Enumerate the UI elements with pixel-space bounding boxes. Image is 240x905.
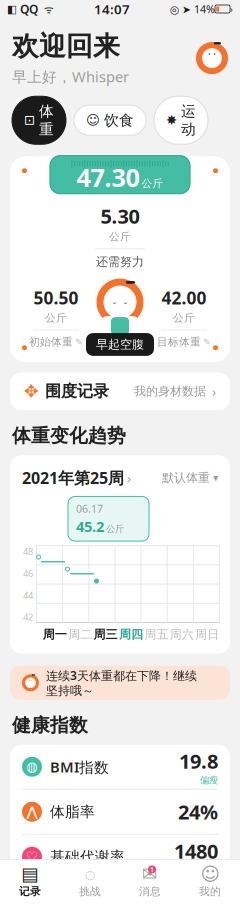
staticText: 06.17 [76, 501, 103, 516]
staticText: 50.50 [33, 286, 78, 309]
staticText: 早上好，Whisper [12, 67, 129, 86]
staticText: 周三 [94, 627, 118, 642]
staticText: 47.30 [76, 160, 139, 194]
staticText: 健康指数 [12, 714, 88, 737]
staticText: 围度记录 [45, 381, 109, 401]
staticText: 2021年第25周 [22, 467, 124, 488]
staticText: 1 [150, 865, 154, 874]
staticText: 还需努力 [96, 254, 144, 269]
staticText: 运动 [181, 102, 196, 138]
staticText: ᯤ [38, 2, 54, 16]
staticText: ☺ [200, 863, 219, 885]
staticText: 消息 [139, 885, 161, 898]
staticText: ⊡ [24, 113, 35, 128]
staticText: 44 [23, 589, 33, 601]
staticText: 14:07 [94, 0, 130, 18]
staticText: › [212, 382, 216, 400]
button[interactable]: 默认体重 [162, 470, 218, 485]
staticText: 周六 [170, 627, 194, 642]
staticText: 我的 [199, 885, 221, 898]
button[interactable]: ◌ [60, 859, 120, 905]
staticText: 目标体重 [157, 335, 201, 349]
button[interactable]: 50.50 [28, 286, 84, 349]
staticText: 45.2 [76, 517, 104, 536]
staticText: › [127, 469, 131, 487]
staticText: ✎ [203, 337, 211, 347]
staticText: 体脂率 [50, 803, 95, 821]
staticText: 公斤 [106, 523, 124, 535]
staticText: ◧ [7, 3, 17, 15]
staticText: 周一 [43, 627, 67, 642]
staticText: 46 [23, 567, 33, 579]
staticText: 19.8 [179, 748, 218, 774]
staticText: QQ [17, 1, 38, 17]
button[interactable]: ◍ [10, 745, 230, 789]
staticText: ✎ [75, 337, 83, 347]
staticText: 42.00 [161, 286, 206, 309]
staticText: 1480 [174, 838, 218, 864]
staticText: 48 [23, 545, 33, 557]
staticText: 公斤 [141, 177, 163, 190]
staticText: ˘ [112, 299, 116, 311]
staticText: 千卡 [200, 864, 218, 876]
button[interactable]: ⊡ [12, 96, 66, 144]
staticText: ◌ [84, 862, 95, 886]
staticText: ▤ [21, 863, 39, 885]
staticText: 5.30 [100, 203, 139, 229]
staticText: 42 [23, 611, 33, 623]
staticText: 周日 [195, 627, 219, 642]
button[interactable]: ☺ [180, 859, 240, 905]
staticText: 欢迎回来 [12, 30, 120, 63]
button[interactable]: ☺ [74, 105, 146, 135]
staticText: 周四 [119, 627, 143, 642]
button[interactable]: 早起空腹 [86, 333, 154, 356]
staticText: ◎ ➤ 14% [170, 2, 215, 16]
button[interactable]: 42.00 [156, 286, 212, 349]
button[interactable]: ✥ [10, 372, 230, 410]
staticText: 周二 [68, 627, 92, 642]
staticText: 连续3天体重都在下降！继续坚持哦～ [46, 667, 197, 698]
staticText: BMI指数 [50, 757, 109, 777]
button[interactable]: ▤ [0, 859, 60, 905]
staticText: 周五 [144, 627, 168, 642]
button[interactable]: ♡ [10, 835, 230, 879]
staticText: 体重变化趋势 [12, 424, 126, 447]
button[interactable]: 2021年第25周 [22, 467, 131, 488]
staticText: 挑战 [79, 885, 101, 898]
staticText: 初始体重 [29, 335, 73, 349]
staticText: ✉ [142, 863, 158, 885]
staticText: 公斤 [173, 311, 195, 324]
staticText: ⋀ [26, 804, 37, 819]
staticText: ▾ [213, 472, 218, 484]
staticText: 公斤 [45, 311, 67, 324]
staticText: ◍ [26, 759, 38, 774]
staticText: ˘ [123, 299, 127, 311]
staticText: ☺ [86, 113, 100, 128]
staticText: 我的身材数据 [134, 384, 206, 399]
staticText: ✸ [166, 113, 177, 128]
staticText: 24% [178, 798, 218, 825]
staticText: 饮食 [104, 111, 134, 129]
staticText: 偏瘦 [200, 774, 218, 786]
button[interactable]: ✉ [120, 859, 180, 905]
staticText: 默认体重 [162, 470, 210, 485]
staticText: 公斤 [109, 230, 131, 243]
button[interactable]: ✸ [154, 96, 208, 144]
staticText: 早起空腹 [96, 337, 144, 352]
button[interactable]: ⋀ [10, 790, 230, 834]
staticText: ♡ [26, 849, 38, 864]
staticText: ✥ [24, 381, 39, 401]
staticText: › [230, 3, 233, 15]
staticText: 基础代谢率 [50, 848, 125, 866]
staticText: 体重 [39, 102, 54, 138]
staticText: 记录 [19, 885, 41, 898]
